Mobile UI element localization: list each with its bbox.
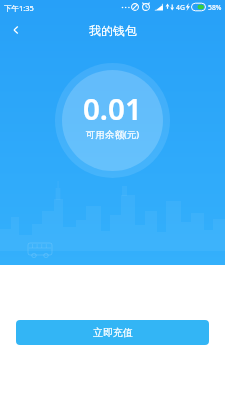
button[interactable]: 立即充值 [16,320,209,345]
button[interactable]: Back [0,14,32,46]
staticText: 下午1:35 [4,3,34,13]
staticText: 58% [208,3,222,12]
staticText: 0.01 [83,88,142,128]
staticText: 立即充值 [93,326,133,339]
staticText: 4G [176,3,185,12]
staticText: 我的钱包 [89,23,137,38]
staticText: 可用余额(元) [86,128,140,141]
